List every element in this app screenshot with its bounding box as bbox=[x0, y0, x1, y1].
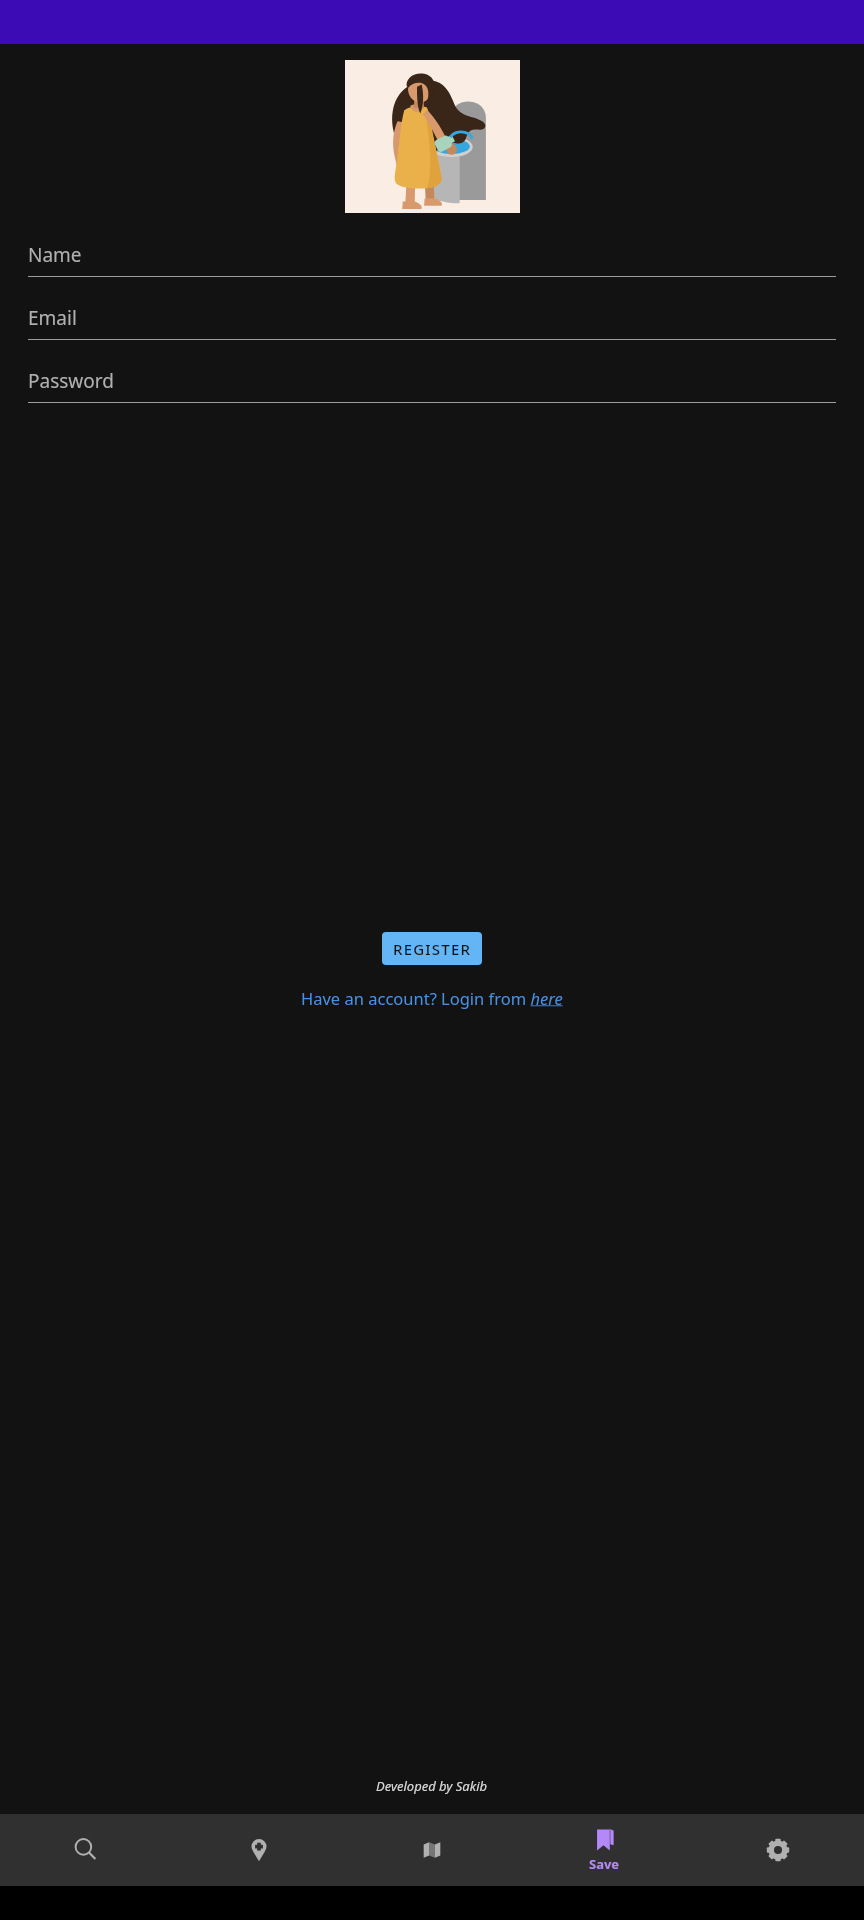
button[interactable]: Password bbox=[28, 368, 836, 403]
staticText: REGISTER bbox=[393, 939, 472, 959]
staticText: Save bbox=[589, 1855, 620, 1873]
staticText: Email bbox=[28, 305, 77, 331]
button[interactable]: REGISTER bbox=[382, 932, 482, 965]
button[interactable]: Name bbox=[28, 242, 836, 277]
staticText: Password bbox=[28, 368, 114, 394]
staticText: Name bbox=[28, 242, 82, 268]
button[interactable]: Have an account? Login from here bbox=[293, 985, 571, 1011]
button[interactable]: Add place bbox=[172, 1814, 345, 1886]
button[interactable]: Map bbox=[345, 1814, 518, 1886]
button[interactable]: Search bbox=[0, 1814, 172, 1886]
button[interactable]: Save bbox=[518, 1814, 691, 1886]
staticText: Have an account? Login from here bbox=[301, 987, 563, 1009]
staticText: Developed by Sakib bbox=[376, 1777, 488, 1795]
button[interactable]: Settings bbox=[691, 1814, 864, 1886]
button[interactable]: Email bbox=[28, 305, 836, 340]
